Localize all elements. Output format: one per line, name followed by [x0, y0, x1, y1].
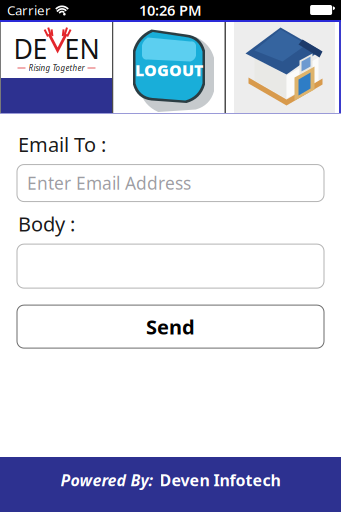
staticText: DE	[13, 31, 47, 66]
button[interactable]: Enter Email Address	[17, 165, 324, 202]
button[interactable]	[17, 244, 324, 288]
staticText: Powered By:	[60, 469, 153, 491]
staticText: Rising Together	[28, 63, 84, 73]
button[interactable]: Logout	[113, 22, 224, 113]
staticText: Carrier	[7, 1, 51, 19]
staticText: 10:26 PM	[139, 0, 202, 20]
staticText: LOGOUT	[135, 59, 203, 81]
staticText: Deven Infotech	[159, 469, 280, 491]
button[interactable]: Send	[17, 305, 324, 348]
staticText: Body :	[18, 211, 75, 237]
staticText: Enter Email Address	[27, 172, 191, 195]
staticText: Email To :	[18, 131, 106, 158]
button[interactable]: Home	[226, 22, 339, 113]
staticText: EN	[64, 31, 99, 66]
staticText: Send	[146, 313, 195, 340]
